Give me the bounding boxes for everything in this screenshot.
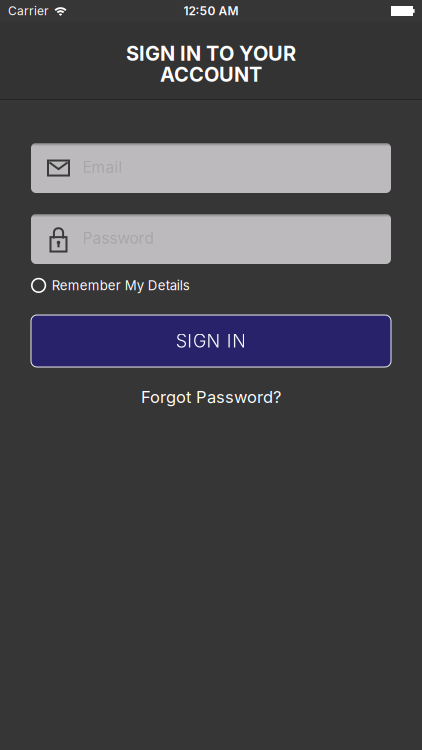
- staticText: SIGN IN TO YOUR: [126, 41, 296, 66]
- button[interactable]: Forgot Password?: [141, 387, 281, 407]
- staticText: SIGN IN: [176, 330, 246, 352]
- staticText: Carrier: [8, 4, 49, 18]
- staticText: Forgot Password?: [141, 387, 281, 407]
- staticText: 12:50 AM: [183, 4, 238, 18]
- staticText: Password: [82, 229, 153, 247]
- staticText: Remember My Details: [52, 277, 190, 293]
- staticText: Email: [82, 158, 122, 176]
- button[interactable]: Remember My Details: [31, 278, 391, 293]
- button[interactable]: Email: [31, 143, 391, 193]
- staticText: ACCOUNT: [160, 62, 262, 87]
- button[interactable]: Password: [31, 214, 391, 264]
- button[interactable]: SIGN IN: [31, 315, 391, 367]
